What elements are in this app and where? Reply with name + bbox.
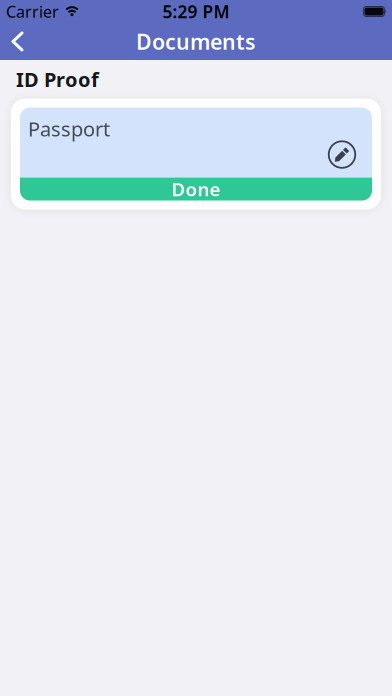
button[interactable]: Edit	[327, 140, 357, 170]
staticText: 5:29 PM	[162, 0, 229, 23]
staticText: Passport	[28, 116, 110, 142]
staticText: Done	[171, 177, 220, 201]
staticText: Documents	[136, 27, 256, 56]
button[interactable]: Done	[20, 178, 372, 201]
button[interactable]: Back	[0, 23, 39, 60]
staticText: ID Proof	[16, 66, 99, 93]
staticText: Carrier	[6, 1, 59, 22]
